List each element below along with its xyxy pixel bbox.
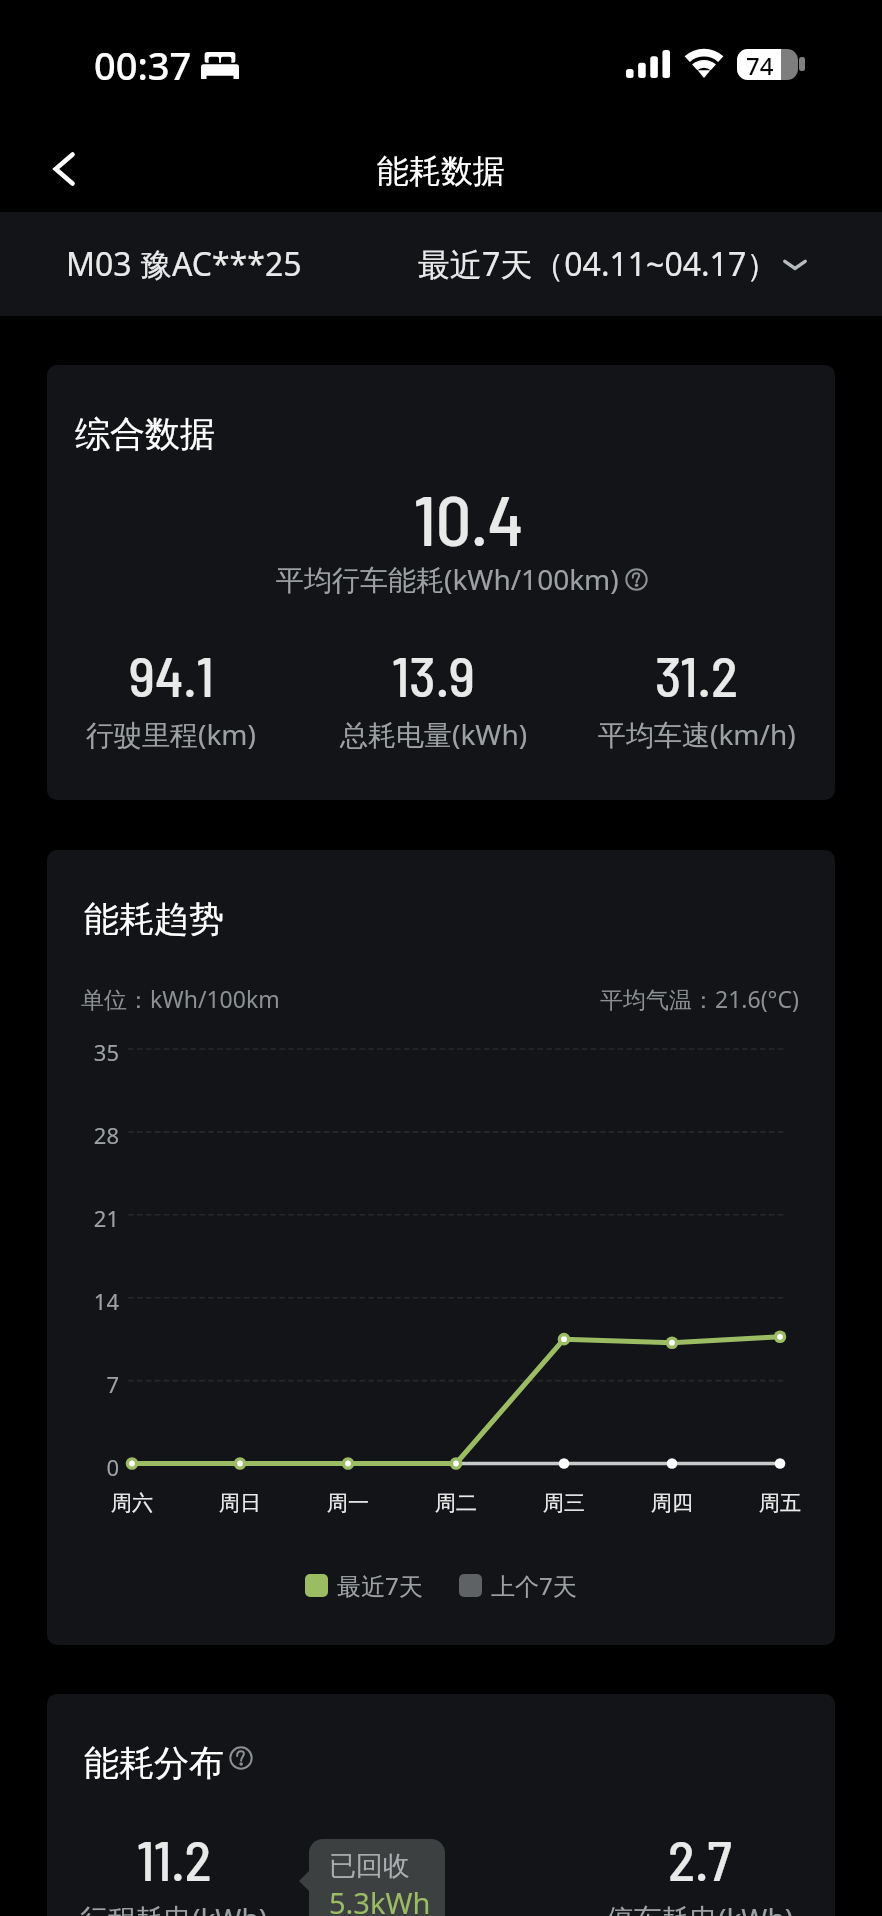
staticText: 21 [58, 1203, 119, 1233]
staticText: 周一 [298, 1490, 398, 1516]
staticText: 能耗数据 [377, 151, 505, 191]
staticText: 停车耗电(kWh) [606, 1899, 794, 1916]
staticText: 周五 [730, 1490, 830, 1516]
staticText: 13.9 [392, 641, 475, 708]
staticText: 总耗电量(kWh) [340, 715, 528, 753]
staticText: 31.2 [655, 641, 738, 708]
staticText: 周四 [622, 1490, 722, 1516]
staticText: 能耗分布 [84, 1741, 224, 1785]
staticText: 平均气温：21.6(°C) [600, 983, 799, 1014]
staticText: 周三 [514, 1490, 614, 1516]
staticText: 上个7天 [491, 1569, 577, 1602]
staticText: 7 [58, 1369, 119, 1399]
staticText: 5.3kWh [329, 1883, 431, 1916]
staticText: 14 [58, 1286, 119, 1316]
staticText: 单位：kWh/100km [81, 983, 280, 1014]
staticText: 最近7天（04.11~04.17） [418, 242, 779, 286]
staticText: 11.2 [137, 1825, 212, 1892]
staticText: 最近7天 [337, 1569, 423, 1602]
staticText: 周二 [406, 1490, 506, 1516]
button[interactable]: Back [36, 140, 94, 198]
staticText: 0 [58, 1452, 119, 1482]
staticText: M03 豫AC***25 [66, 242, 302, 286]
staticText: 35 [58, 1037, 119, 1067]
staticText: 周日 [190, 1490, 290, 1516]
staticText: 行程耗电(kWh) [80, 1899, 268, 1916]
button[interactable]: M03 豫AC***25 [0, 212, 882, 316]
staticText: 10.4 [414, 476, 524, 560]
staticText: 综合数据 [75, 412, 215, 456]
staticText: 已回收 [329, 1849, 410, 1883]
staticText: 94.1 [129, 641, 214, 708]
staticText: 行驶里程(km) [86, 715, 256, 753]
staticText: 能耗趋势 [84, 897, 224, 941]
staticText: 平均行车能耗(kWh/100km) [276, 560, 619, 598]
staticText: 74 [746, 49, 774, 80]
staticText: 2.7 [668, 1825, 732, 1892]
staticText: 平均车速(km/h) [598, 715, 796, 753]
staticText: 周六 [82, 1490, 182, 1516]
staticText: 00:37 [94, 39, 192, 91]
staticText: 28 [58, 1120, 119, 1150]
